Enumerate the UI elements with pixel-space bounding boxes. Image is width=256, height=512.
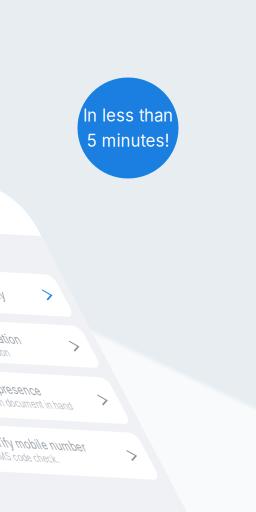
staticText: 5 minutes! — [86, 130, 169, 151]
staticText: Steps to complete — [38, 68, 153, 84]
button[interactable]: Verify mobile number — [17, 277, 256, 330]
staticText: SMS code check. — [38, 305, 137, 319]
button[interactable]: Confirm presence — [17, 214, 256, 267]
button[interactable]: Photo identification — [17, 156, 256, 204]
staticText: In less than — [83, 105, 173, 125]
staticText: Photo identification — [38, 166, 176, 184]
button[interactable]: Confirm your identity — [17, 98, 256, 146]
staticText: Confirm your identity — [38, 115, 188, 133]
staticText: Verify mobile number — [38, 287, 190, 305]
